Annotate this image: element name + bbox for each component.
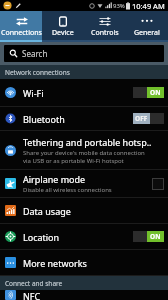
staticText: General (134, 28, 160, 38)
staticText: Network connections (5, 68, 70, 77)
button[interactable]: General (126, 11, 168, 42)
button[interactable]: Tethering and portable hotsp.. (0, 131, 168, 169)
staticText: Disable all wireless connections (23, 186, 112, 194)
button[interactable]: Data usage (0, 198, 168, 223)
staticText: 10:49 AM (132, 1, 165, 11)
staticText: Airplane mode (23, 173, 86, 185)
staticText: Controls (91, 28, 119, 38)
staticText: OFF (135, 114, 148, 123)
staticText: More networks (23, 257, 87, 269)
button[interactable]: Controls (84, 11, 126, 42)
staticText: 93% (113, 2, 125, 10)
staticText: via USB or as portable Wi-Fi hotspot (23, 157, 124, 165)
staticText: Tethering and portable hotsp.. (23, 136, 152, 148)
button[interactable]: Search (4, 45, 164, 62)
button[interactable]: Connections (0, 11, 42, 42)
button[interactable]: Bluetooth (0, 107, 168, 130)
staticText: ON (150, 232, 161, 241)
button[interactable]: OFF (133, 113, 164, 124)
staticText: ON (150, 88, 161, 97)
staticText: NFC (23, 290, 41, 300)
staticText: Data usage (23, 205, 71, 217)
staticText: Search (22, 48, 48, 59)
staticText: Connections (1, 28, 42, 38)
button[interactable]: More networks (0, 250, 168, 275)
staticText: Share your device's mobile data connecti… (23, 149, 145, 157)
button[interactable]: ON (133, 231, 164, 242)
button[interactable]: Airplane mode (0, 170, 168, 197)
button[interactable]: Device (42, 11, 84, 42)
staticText: Location (23, 231, 60, 243)
button[interactable]: ON (133, 87, 164, 98)
button[interactable]: Wi-Fi (0, 79, 168, 106)
button[interactable]: NFC (0, 290, 168, 300)
staticText: Connect and share (5, 279, 63, 288)
staticText: Bluetooth (23, 113, 65, 125)
staticText: Wi-Fi (23, 87, 44, 99)
button[interactable]: Location (0, 224, 168, 249)
staticText: Device (52, 28, 74, 38)
